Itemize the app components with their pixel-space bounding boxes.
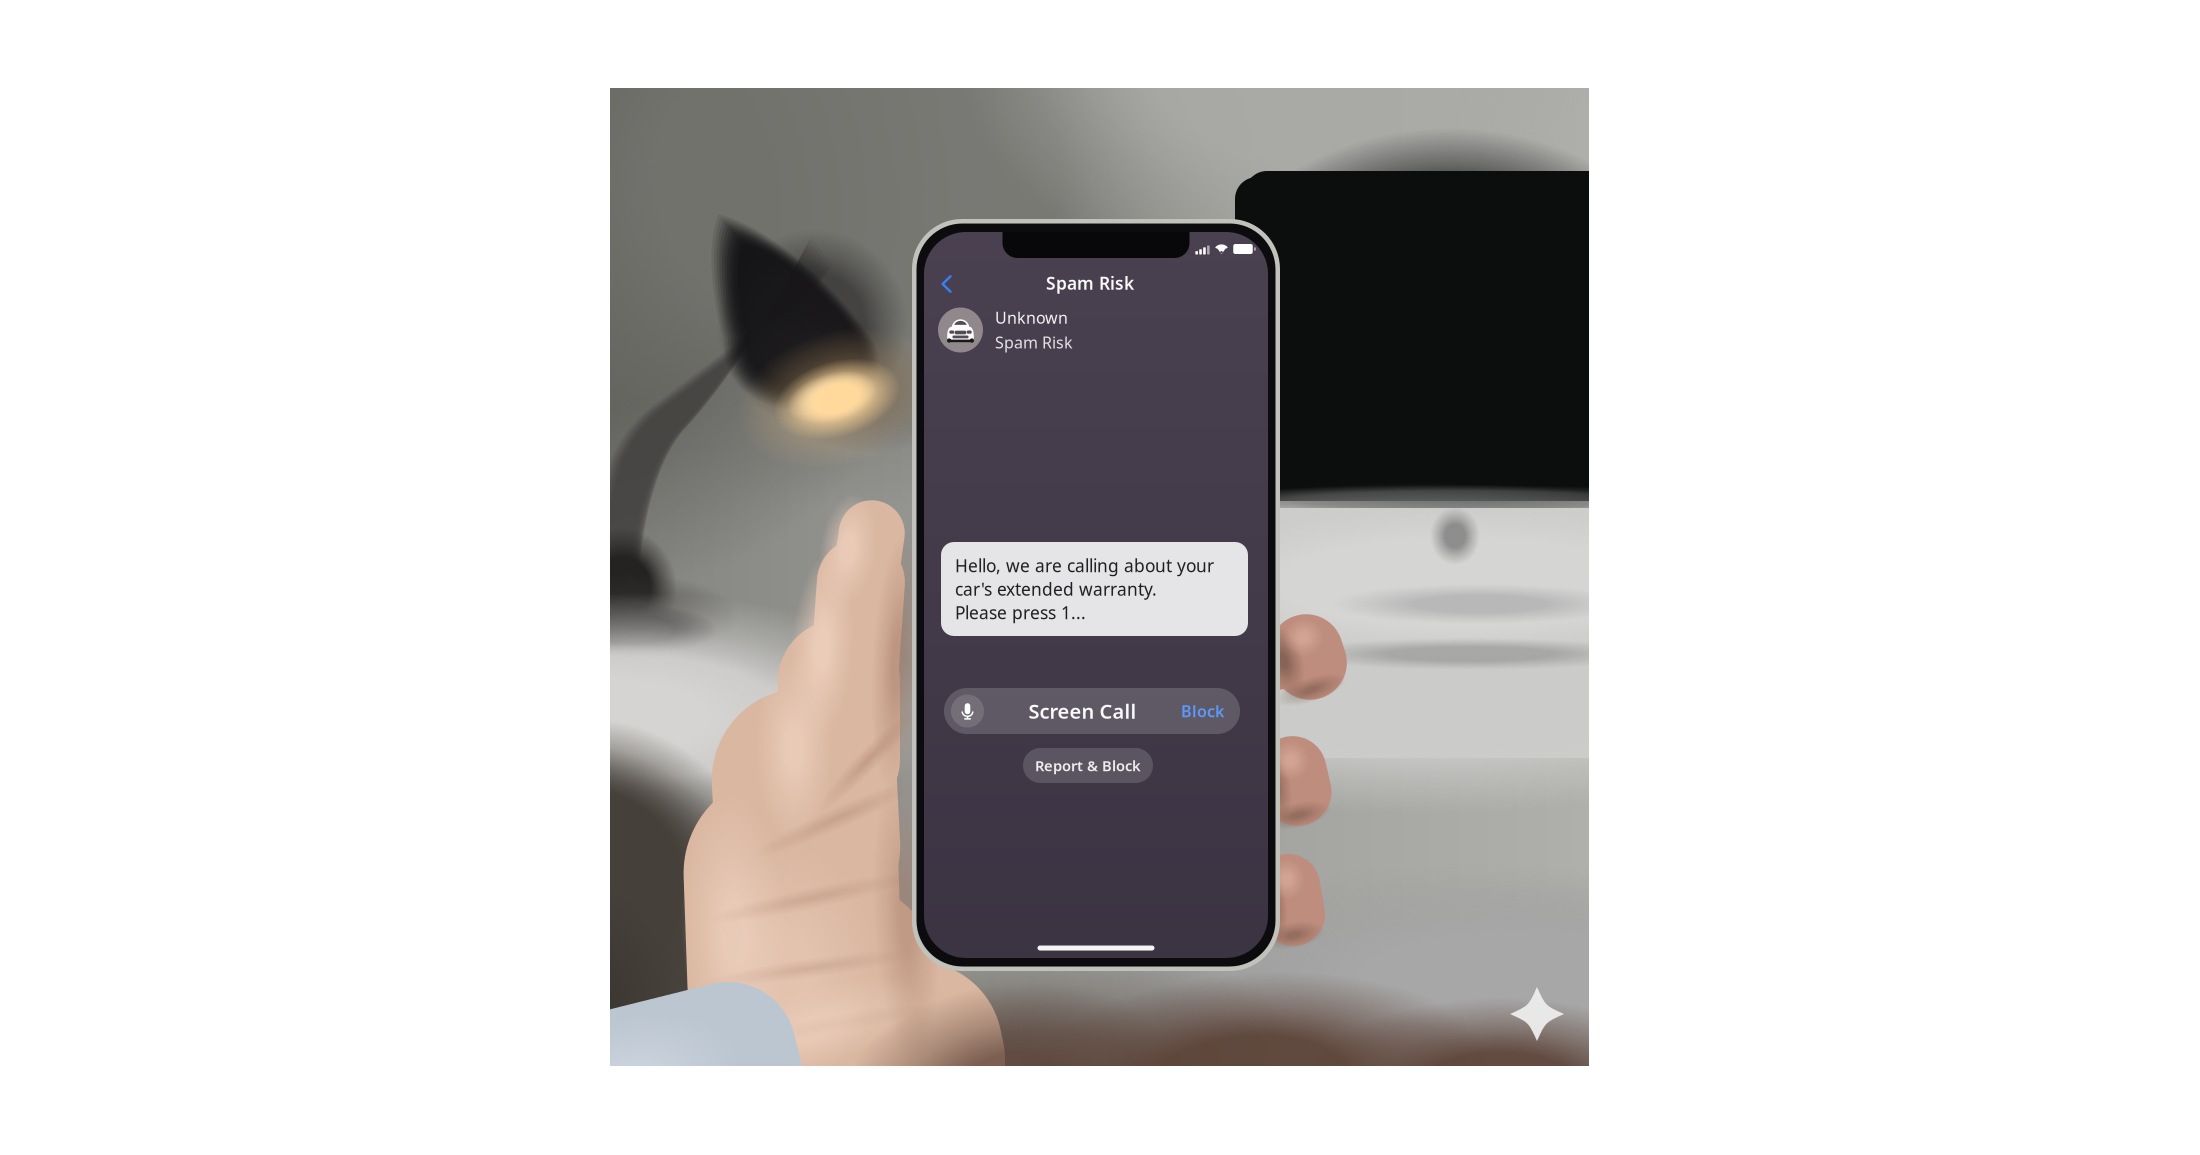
- button[interactable]: Screen Call: [944, 688, 1240, 734]
- staticText: Hello, we are calling about your: [955, 554, 1214, 577]
- button[interactable]: Report & Block: [1023, 748, 1153, 783]
- staticText: Report & Block: [1035, 756, 1141, 775]
- staticText: Please press 1...: [955, 601, 1086, 624]
- button[interactable]: Back: [930, 265, 963, 303]
- staticText: Unknown: [995, 307, 1068, 328]
- staticText: Screen Call: [1028, 698, 1136, 724]
- staticText: Spam Risk: [1046, 271, 1134, 294]
- staticText: Spam Risk: [995, 332, 1073, 353]
- staticText: car's extended warranty.: [955, 577, 1157, 600]
- staticText: Block: [1181, 700, 1224, 722]
